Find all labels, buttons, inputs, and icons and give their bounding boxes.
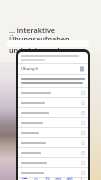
button[interactable] bbox=[18, 98, 88, 107]
staticText: ... interaktive Übungsaufgaben bbox=[9, 25, 93, 44]
button[interactable] bbox=[18, 168, 88, 177]
button[interactable]: Teilen bbox=[65, 178, 74, 180]
staticText: und vieles mehr. bbox=[9, 45, 67, 55]
button[interactable] bbox=[18, 158, 88, 167]
button[interactable]: Suche bbox=[32, 178, 41, 180]
button[interactable]: Übung 6 bbox=[18, 64, 88, 74]
staticText: Übung 6 bbox=[21, 66, 39, 72]
button[interactable]: Lesezeichen bbox=[43, 178, 52, 180]
button[interactable] bbox=[18, 138, 88, 147]
button[interactable] bbox=[18, 108, 88, 117]
button[interactable]: Notizen bbox=[54, 178, 63, 180]
button[interactable] bbox=[18, 148, 88, 157]
button[interactable]: Inhalt bbox=[20, 178, 29, 180]
button[interactable]: Mehr bbox=[77, 178, 86, 180]
button[interactable] bbox=[18, 88, 88, 97]
button[interactable] bbox=[18, 128, 88, 137]
button[interactable] bbox=[18, 118, 88, 127]
button[interactable]: Lesezeichen bbox=[79, 66, 85, 72]
